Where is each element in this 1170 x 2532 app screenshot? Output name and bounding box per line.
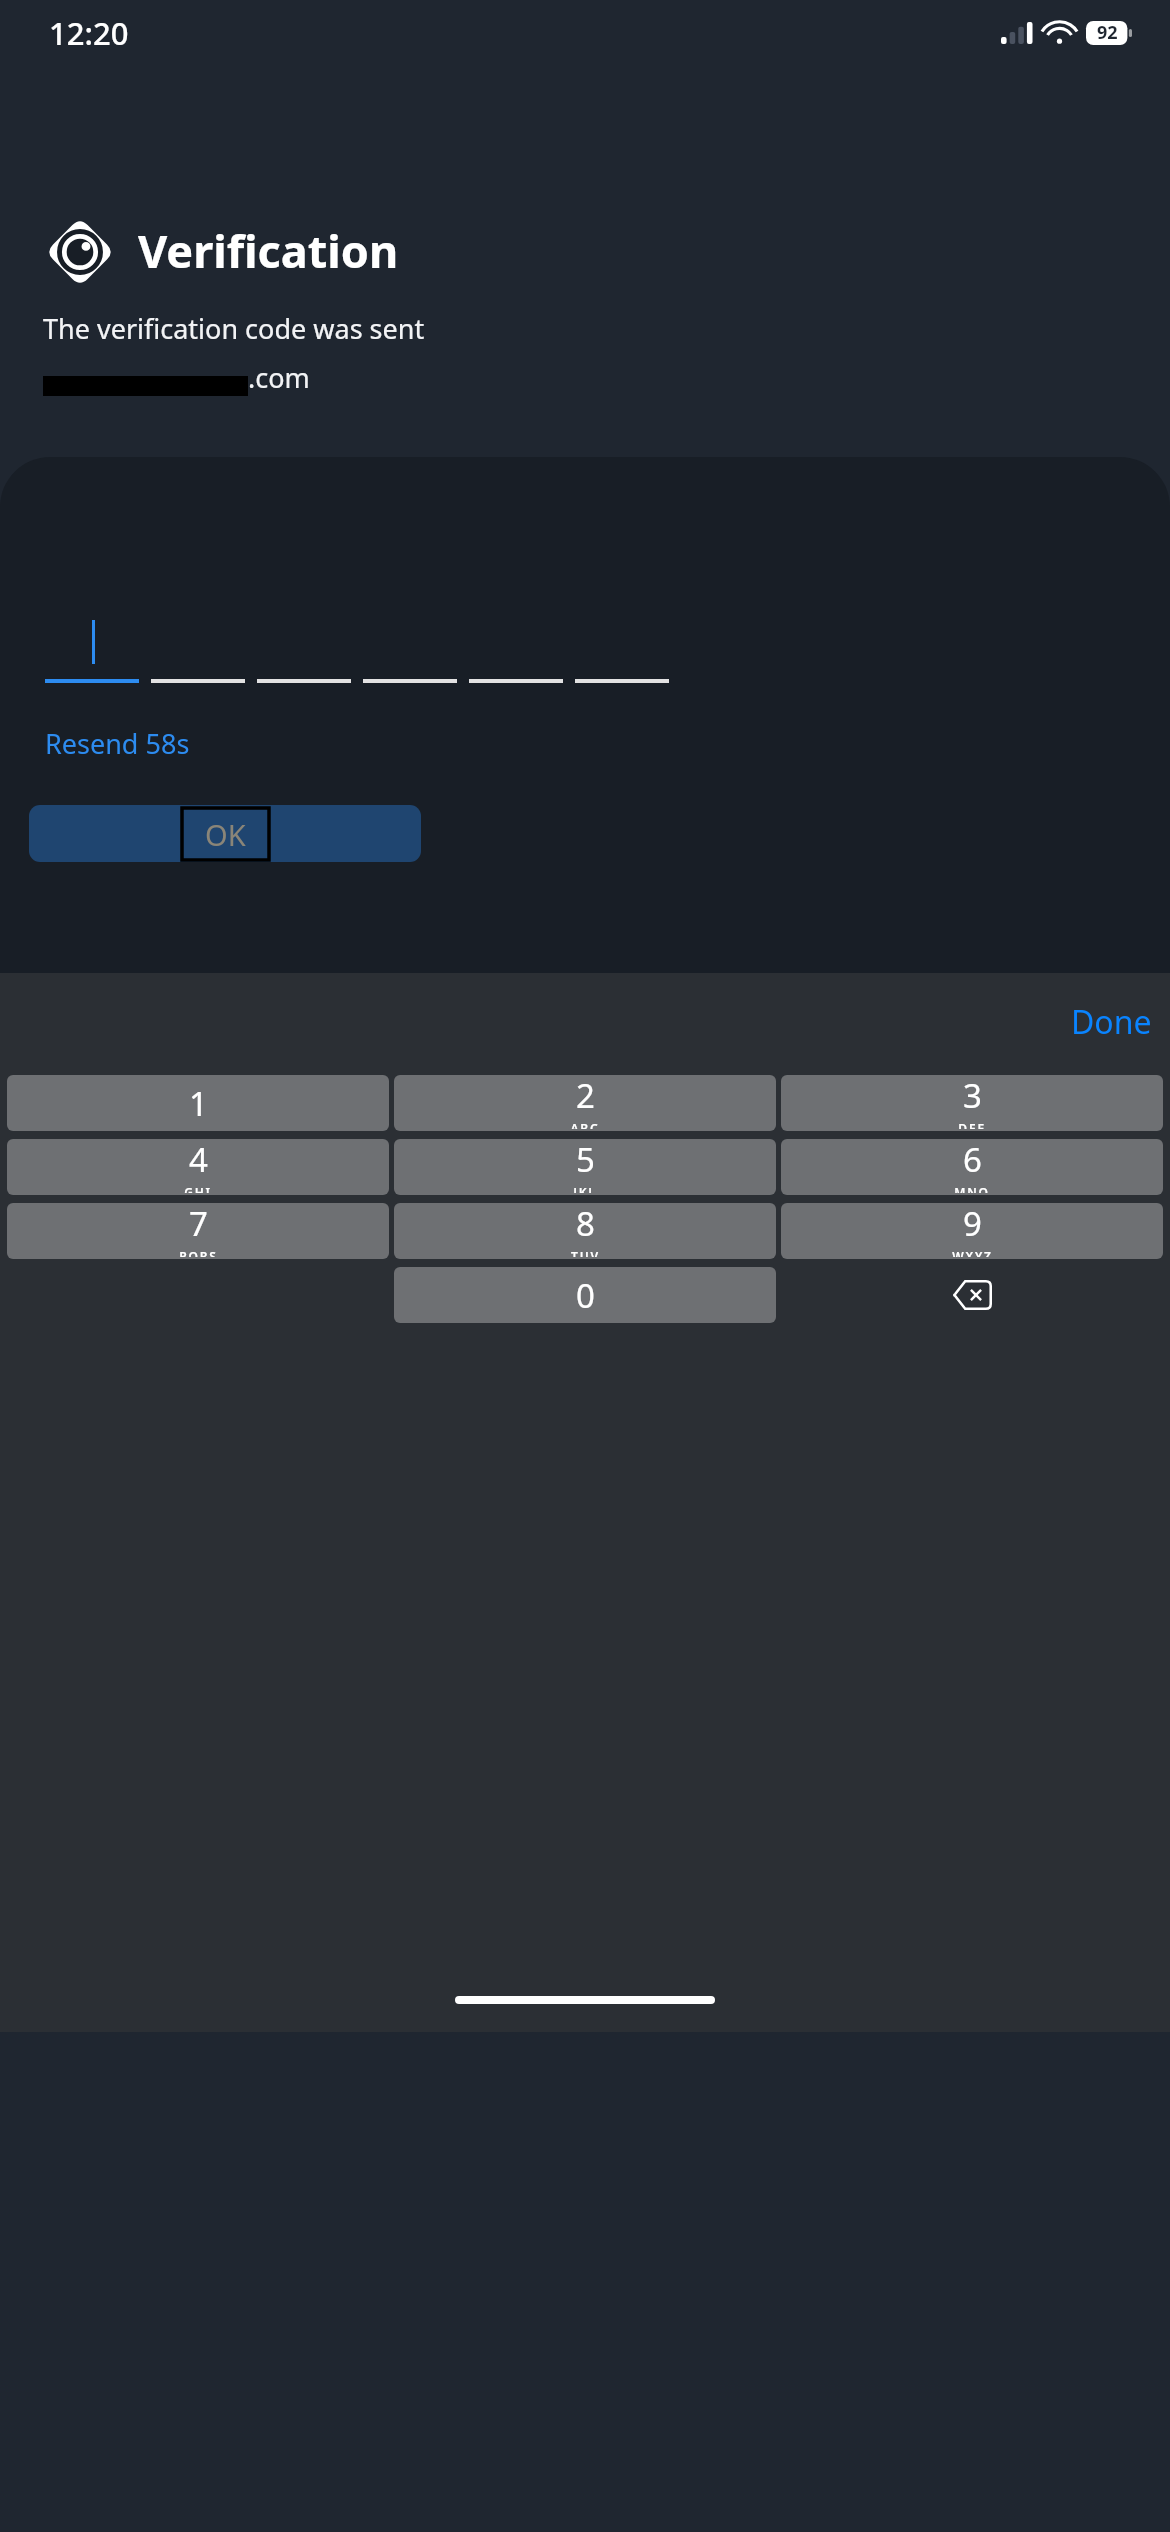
staticText: 0 [576,1273,595,1318]
staticText: 3 [963,1075,982,1118]
staticText: 5 [576,1139,595,1182]
button[interactable]: 4 [7,1139,389,1195]
button[interactable]: 9 [781,1203,1163,1259]
button[interactable]: Resend 58s [45,725,190,762]
button[interactable]: 8 [394,1203,776,1259]
staticText: DEF [958,1120,986,1129]
staticText: 4 [189,1139,208,1182]
staticText: The verification code was sent [43,310,425,347]
staticText: 8 [576,1203,595,1246]
button[interactable]: Done [1071,1000,1152,1044]
staticText: ABC [570,1120,600,1129]
button[interactable]: 5 [394,1139,776,1195]
button[interactable]: Backspace [781,1267,1163,1323]
staticText: 9 [963,1203,982,1246]
staticText: WXYZ [952,1248,993,1257]
button[interactable]: OK [29,805,421,862]
staticText: OK [205,815,246,854]
staticText: JKL [573,1184,597,1193]
staticText: 2 [576,1075,595,1118]
staticText: 1 [189,1081,208,1126]
staticText: 7 [189,1203,208,1246]
button[interactable]: 7 [7,1203,389,1259]
staticText: TUV [571,1248,600,1257]
button[interactable]: 0 [394,1267,776,1323]
button[interactable]: 2 [394,1075,776,1131]
staticText: MNO [954,1184,990,1193]
staticText: PQRS [179,1248,218,1257]
button[interactable]: 1 [7,1075,389,1131]
button[interactable]: 3 [781,1075,1163,1131]
staticText: Verification [138,220,399,281]
staticText: GHI [184,1184,212,1193]
staticText: 92 [1097,20,1118,45]
button[interactable]: 6 [781,1139,1163,1195]
staticText: Resend 58s [45,725,190,762]
other: App logo [44,216,116,288]
staticText: Done [1071,1000,1152,1044]
staticText: 6 [963,1139,982,1182]
staticText: 12:20 [49,12,129,54]
staticText: .com [248,359,310,396]
